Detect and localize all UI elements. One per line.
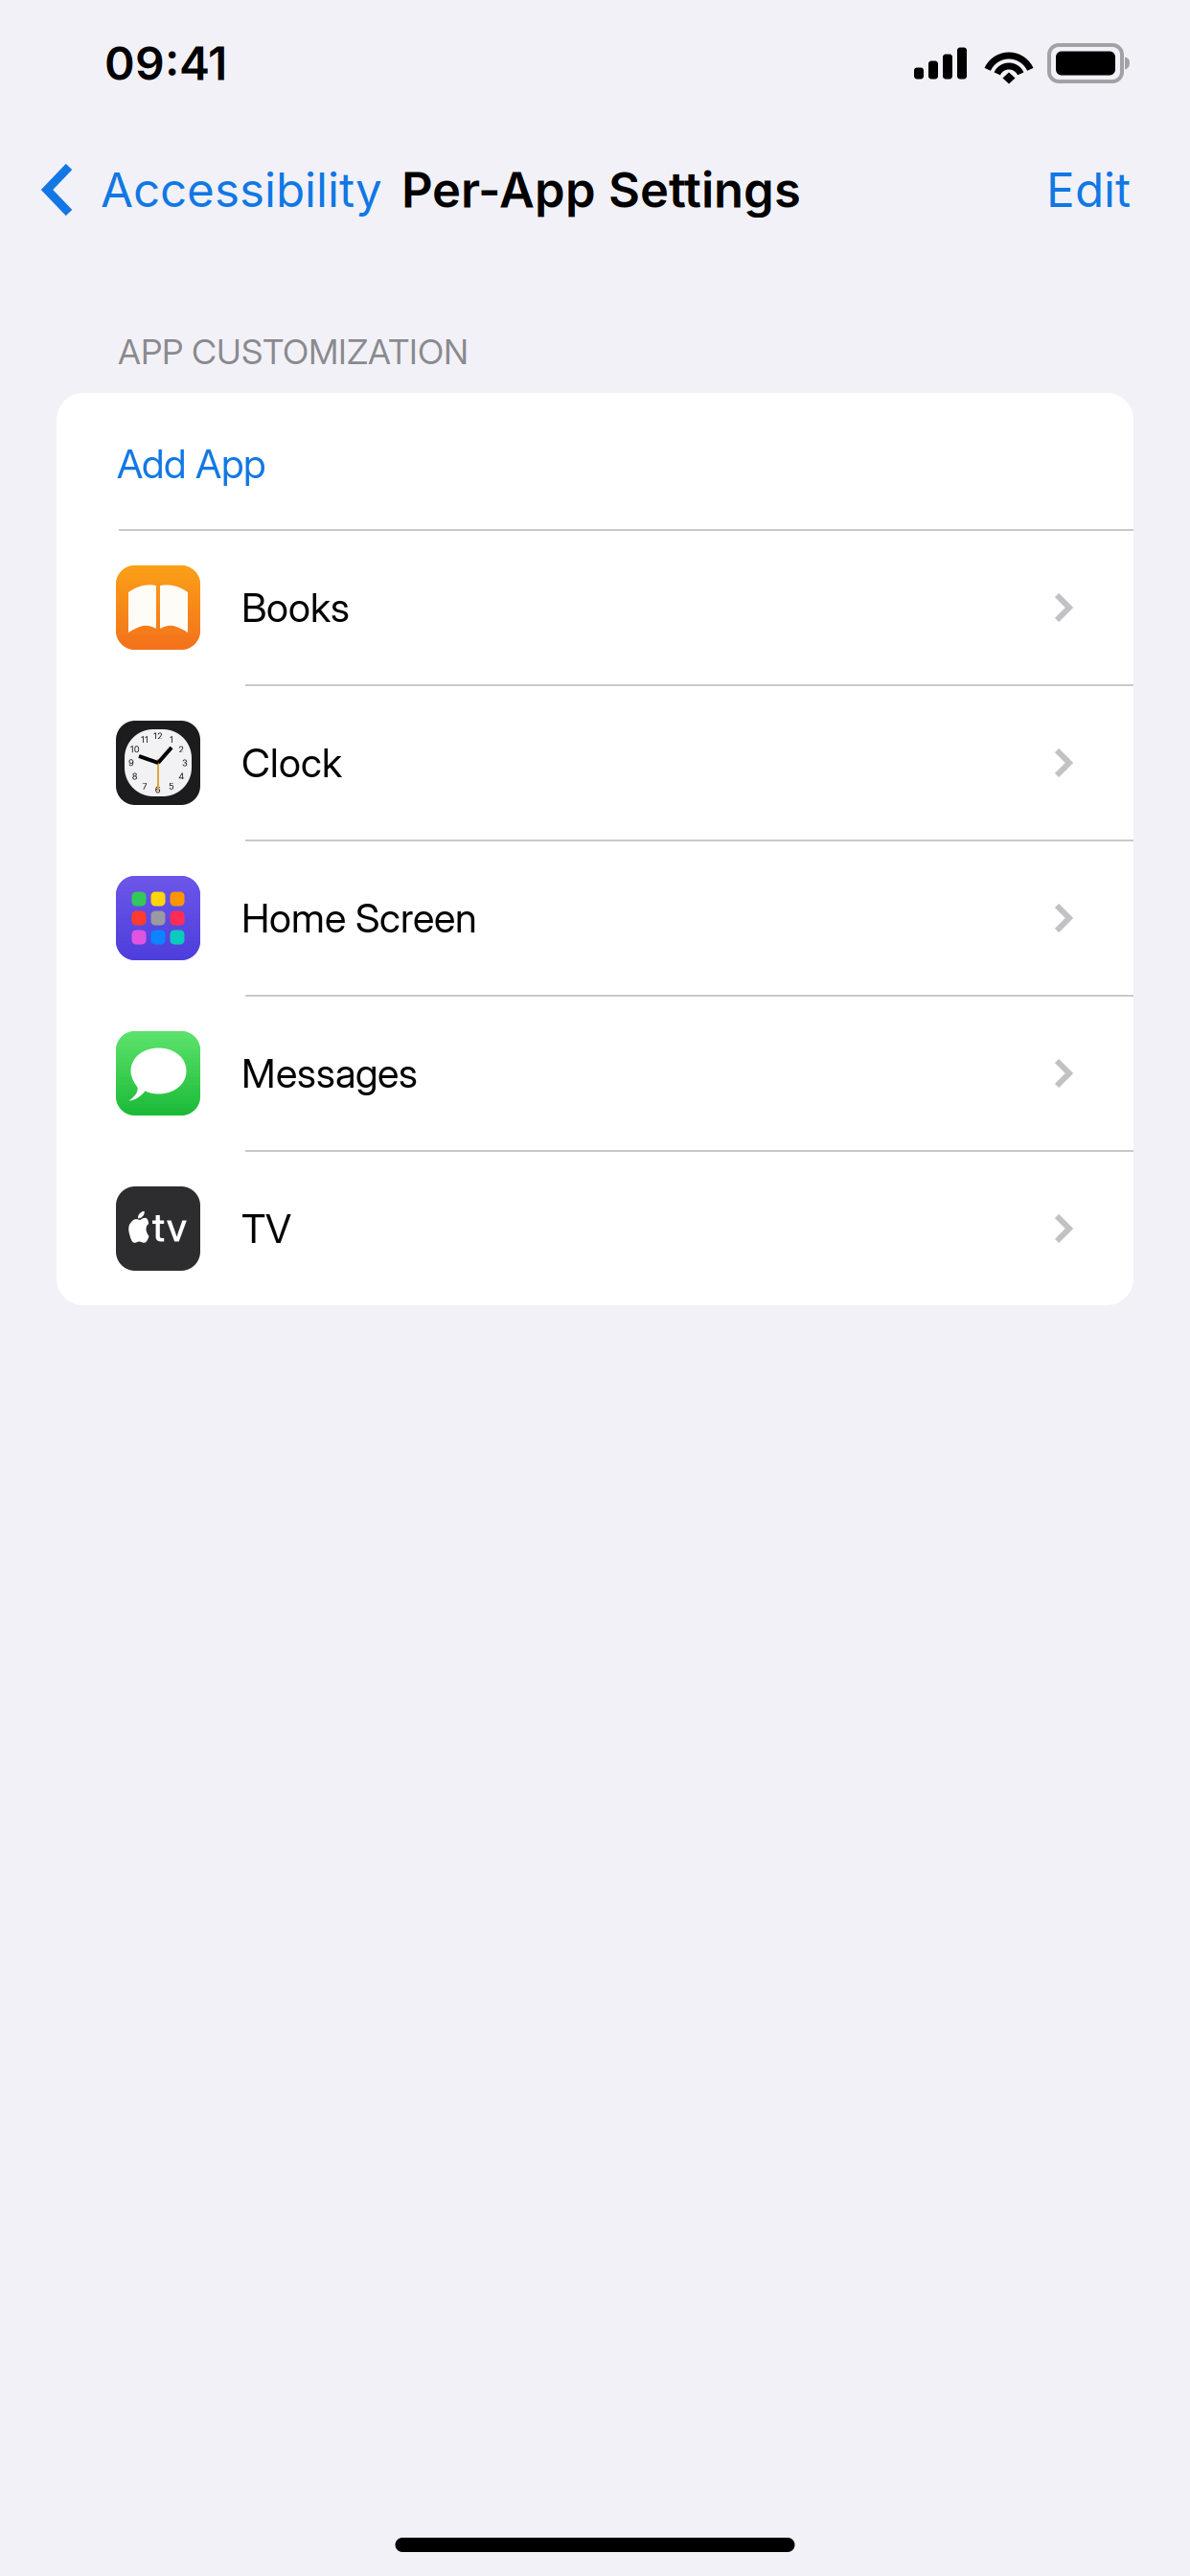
staticText: 10 (130, 744, 140, 755)
staticText: 11 (141, 734, 149, 745)
button[interactable]: Home Screen (57, 841, 1133, 995)
staticText: 9 (128, 757, 134, 768)
staticText: 4 (179, 771, 184, 782)
staticText: 8 (132, 771, 138, 782)
staticText: Messages (241, 1049, 418, 1097)
staticText: Add App (117, 440, 265, 488)
staticText: 09:41 (104, 35, 227, 91)
staticText: Books (241, 584, 350, 632)
button[interactable]: 1 (57, 686, 1133, 839)
staticText: APP CUSTOMIZATION (118, 331, 469, 373)
staticText: Clock (241, 739, 342, 787)
staticText: Home Screen (241, 894, 477, 942)
staticText: Edit (1046, 161, 1131, 218)
button[interactable]: Messages (57, 997, 1133, 1150)
staticText: 5 (169, 781, 174, 791)
staticText: 1 (170, 734, 173, 745)
staticText: Per-App Settings (401, 160, 801, 219)
staticText: 3 (182, 757, 188, 768)
staticText: 12 (153, 731, 163, 741)
staticText: tv (152, 1203, 187, 1251)
button[interactable]: tv (57, 1152, 1133, 1305)
button[interactable]: Back to Accessibility (0, 126, 401, 253)
button[interactable]: Add App (57, 393, 1133, 529)
staticText: Accessibility (101, 161, 382, 218)
button[interactable]: Books (57, 531, 1133, 684)
staticText: 7 (142, 781, 147, 791)
staticText: 2 (178, 744, 184, 755)
staticText: 6 (155, 784, 161, 795)
button[interactable]: Edit (1008, 126, 1190, 253)
staticText: TV (241, 1205, 291, 1253)
